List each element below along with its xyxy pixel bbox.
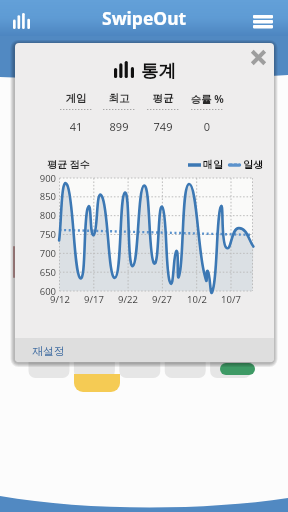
staticText: 900 (29, 172, 56, 185)
staticText: 10/7 (216, 293, 246, 306)
staticText: 850 (29, 190, 56, 203)
staticText: 9/17 (79, 293, 109, 306)
staticText: 9/27 (147, 293, 177, 306)
staticText: 800 (29, 209, 56, 222)
staticText: 41 (46, 119, 106, 134)
staticText: 749 (133, 119, 193, 134)
staticText: 899 (89, 119, 149, 134)
staticText: 일생 (243, 158, 263, 171)
staticText: 매일 (203, 158, 223, 171)
staticText: 600 (29, 285, 56, 298)
staticText: 700 (29, 247, 56, 260)
staticText: 게임 (46, 92, 106, 105)
button[interactable]: Statistics (0, 0, 44, 36)
staticText: 750 (29, 228, 56, 241)
staticText: 9/22 (113, 293, 143, 306)
staticText: 650 (29, 266, 56, 279)
staticText: SwipeOut (102, 6, 187, 30)
staticText: 평균 (133, 92, 193, 105)
staticText: 통계 (141, 60, 176, 82)
staticText: 10/2 (182, 293, 212, 306)
button[interactable]: Menu (244, 0, 288, 36)
staticText: 최고 (89, 92, 149, 105)
button[interactable]: Close (243, 43, 273, 72)
staticText: 0 (177, 119, 237, 134)
staticText: 9/12 (45, 293, 75, 306)
staticText: 승률 % (177, 92, 237, 106)
staticText: 평균 점수 (47, 157, 90, 171)
button[interactable]: 재설정 (32, 344, 65, 358)
